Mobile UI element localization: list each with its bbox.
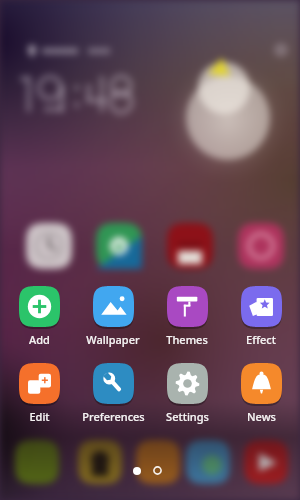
staticText: Add bbox=[29, 332, 50, 347]
staticText: Effect bbox=[246, 332, 276, 347]
button[interactable]: Wallpaper bbox=[78, 286, 148, 347]
button[interactable]: Add bbox=[4, 286, 74, 347]
staticText: Wallpaper bbox=[86, 332, 140, 347]
staticText: Themes bbox=[166, 332, 208, 347]
staticText: Edit bbox=[29, 409, 50, 424]
button[interactable]: Themes bbox=[152, 286, 222, 347]
staticText: Settings bbox=[166, 409, 209, 424]
staticText: News bbox=[247, 409, 276, 424]
button[interactable]: Preferences bbox=[78, 363, 148, 424]
button[interactable]: Home screen page 2 bbox=[153, 466, 162, 475]
staticText: Preferences bbox=[82, 409, 145, 424]
button[interactable]: News bbox=[226, 363, 296, 424]
button[interactable]: Settings bbox=[152, 363, 222, 424]
button[interactable]: Effect bbox=[226, 286, 296, 347]
button[interactable]: Edit bbox=[4, 363, 74, 424]
button[interactable]: Home screen page 1 bbox=[133, 467, 141, 475]
